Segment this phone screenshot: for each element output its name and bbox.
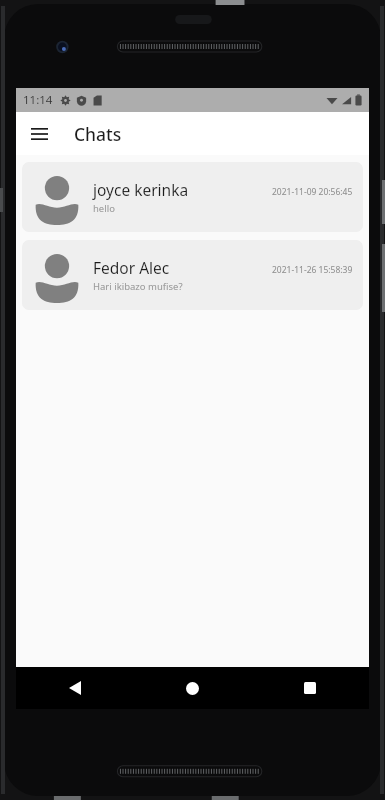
staticText: 2021-11-26 15:58:39 — [272, 264, 353, 276]
staticText: Hari ikibazo mufise? — [93, 280, 183, 293]
button[interactable]: joyce kerinka — [22, 162, 363, 232]
staticText: 11:14 — [23, 92, 53, 108]
staticText: Fedor Alec — [93, 257, 170, 278]
button[interactable]: Fedor Alec — [22, 240, 363, 310]
button[interactable]: Open navigation menu — [20, 115, 58, 153]
staticText: Chats — [74, 122, 122, 146]
staticText: 2021-11-09 20:56:45 — [272, 186, 353, 198]
staticText: joyce kerinka — [93, 179, 189, 200]
button[interactable]: Back — [16, 667, 133, 709]
button[interactable]: Home — [133, 667, 251, 709]
staticText: hello — [93, 202, 115, 215]
button[interactable]: Recent apps — [251, 667, 369, 709]
